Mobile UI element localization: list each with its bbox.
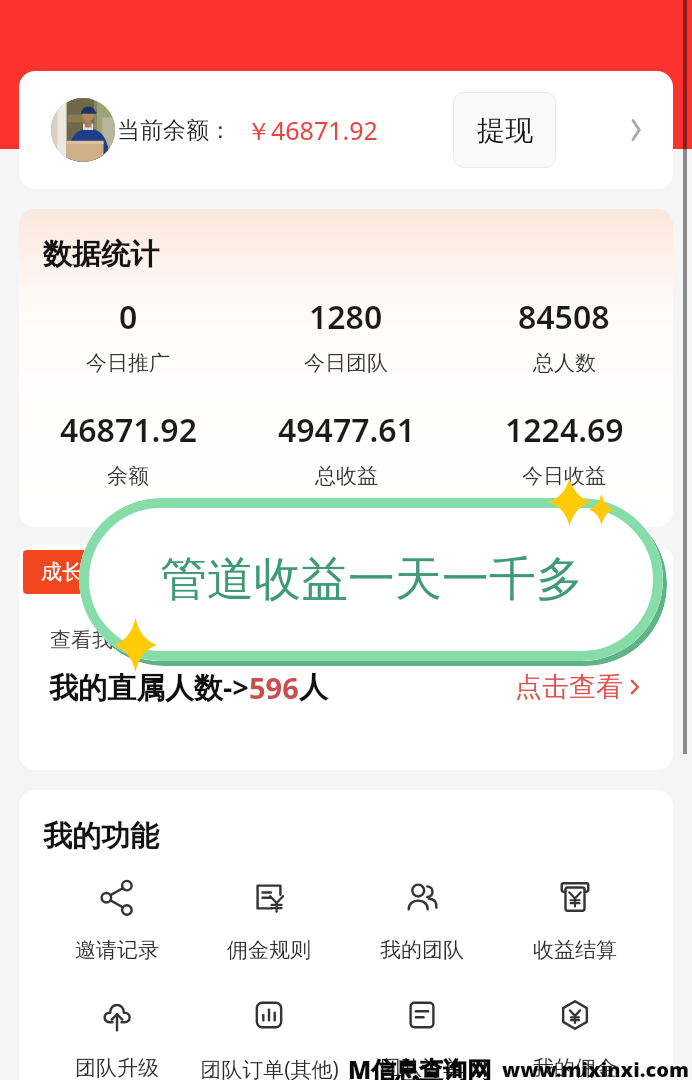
button[interactable]: 提现 <box>453 92 556 168</box>
button[interactable]: 我的团队 <box>345 878 498 963</box>
staticText: 当前余额： <box>117 116 232 145</box>
staticText: 46871.92 <box>60 408 197 452</box>
button[interactable]: 1224.69 <box>455 408 673 489</box>
button[interactable]: 成长值 <box>23 550 122 594</box>
staticText: ￥46871.92 <box>246 113 378 147</box>
staticText: 今日推广 <box>86 350 170 376</box>
staticText: 1280 <box>309 295 383 339</box>
staticText: 团队升级 <box>75 1055 159 1080</box>
button[interactable]: 收益结算 <box>498 878 651 963</box>
button[interactable]: 邀请记录 <box>41 878 193 963</box>
staticText: 总收益 <box>315 463 378 489</box>
staticText: 我的功能 <box>43 818 159 855</box>
staticText: 我的佣金 <box>533 1055 617 1080</box>
button[interactable]: 团队订单 <box>345 996 498 1080</box>
staticText: 团队订单(其他) <box>200 1055 339 1080</box>
staticText: 点击查看 <box>515 670 623 704</box>
staticText: 收益结算 <box>533 937 617 963</box>
staticText: 佣金规则 <box>227 937 311 963</box>
button[interactable]: 46871.92 <box>19 408 237 489</box>
button[interactable]: 当前余额： <box>19 71 673 189</box>
staticText: 团队订单 <box>380 1055 464 1080</box>
staticText: 查看我的成长值 <box>50 627 197 653</box>
button[interactable]: 我的直属人数-> <box>49 667 646 707</box>
button[interactable]: 0 <box>19 295 237 376</box>
staticText: 邀请记录 <box>75 937 159 963</box>
button[interactable]: 我的佣金 <box>498 996 651 1080</box>
button[interactable]: More <box>621 115 651 145</box>
staticText: 596 <box>249 668 299 707</box>
staticText: 数据统计 <box>43 236 159 273</box>
button[interactable]: 佣金规则 <box>193 878 345 963</box>
staticText: 49477.61 <box>278 408 415 452</box>
staticText: 今日收益 <box>522 463 606 489</box>
staticText: 提现 <box>477 113 533 148</box>
button[interactable]: 团队升级 <box>41 996 193 1080</box>
staticText: 总人数 <box>533 350 596 376</box>
staticText: 管道收益一天一千多 <box>160 550 583 609</box>
button[interactable]: 1280 <box>237 295 455 376</box>
staticText: 我的直属人数-> <box>49 667 249 707</box>
staticText: 我的团队 <box>380 937 464 963</box>
staticText: 1224.69 <box>505 408 624 452</box>
staticText: 今日团队 <box>304 350 388 376</box>
button[interactable]: 团队订单(其他) <box>193 996 345 1080</box>
staticText: www.mixinxi.com <box>502 1056 689 1080</box>
staticText: 人 <box>299 669 328 706</box>
button[interactable]: 84508 <box>455 295 673 376</box>
button[interactable]: 49477.61 <box>237 408 455 489</box>
staticText: M信息查询网 <box>348 1053 492 1080</box>
staticText: 余额 <box>107 463 149 489</box>
staticText: 0 <box>119 295 138 339</box>
staticText: 84508 <box>518 295 610 339</box>
staticText: 成长值 <box>41 559 104 585</box>
